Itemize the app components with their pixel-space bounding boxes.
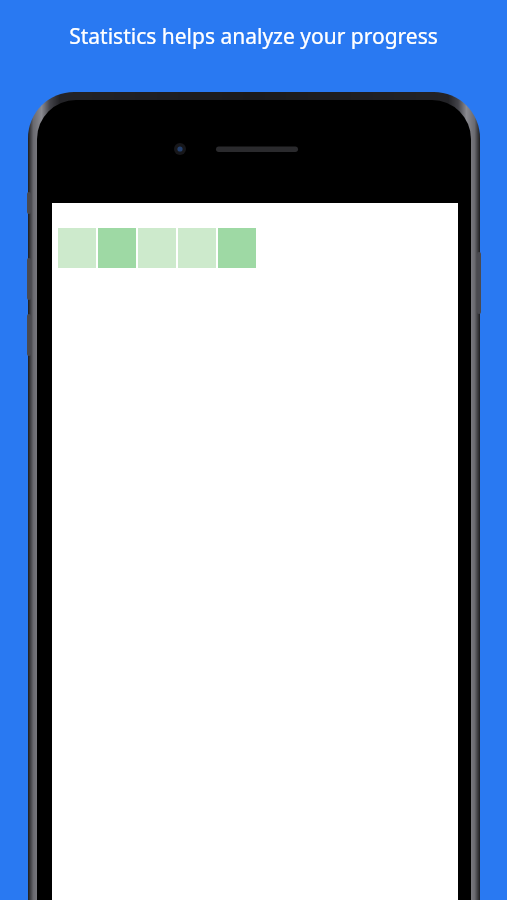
staticText: Statistics helps analyze your progress (0, 22, 507, 51)
